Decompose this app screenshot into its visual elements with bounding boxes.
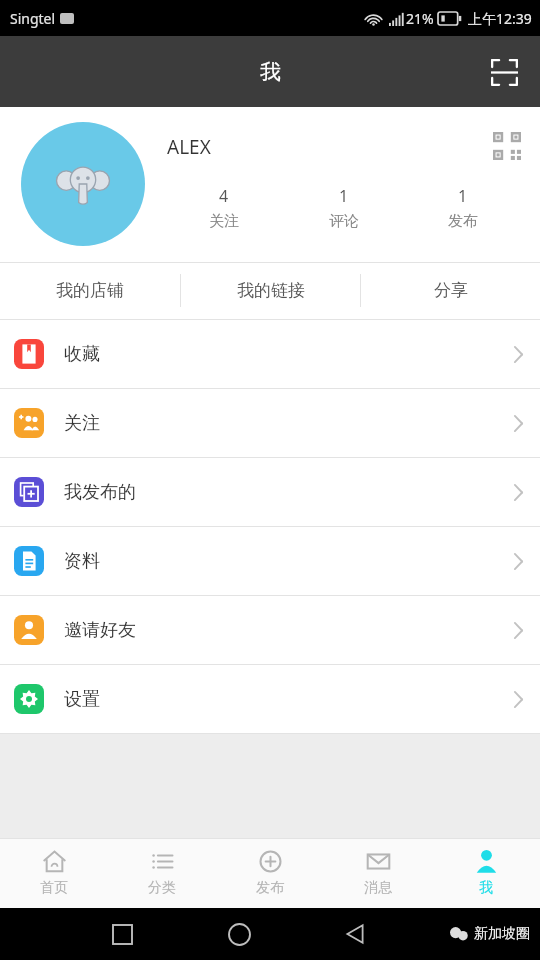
staticText: 我的店铺 xyxy=(56,280,124,301)
button[interactable]: Scan QR code xyxy=(482,50,526,94)
button[interactable]: 资料 xyxy=(0,527,540,595)
staticText: 发布 xyxy=(256,879,284,897)
staticText: 1 xyxy=(458,185,468,207)
staticText: 新加坡圈 xyxy=(474,925,530,943)
button[interactable]: 分类 xyxy=(108,839,216,908)
staticText: 发布 xyxy=(448,212,478,231)
staticText: 收藏 xyxy=(64,343,100,366)
button[interactable]: 我的店铺 xyxy=(0,262,180,319)
staticText: 我的链接 xyxy=(237,280,305,301)
button[interactable]: 我 xyxy=(432,839,540,908)
button[interactable]: Home xyxy=(217,912,261,956)
button[interactable]: 发布 xyxy=(216,839,324,908)
staticText: 我 xyxy=(479,879,493,897)
staticText: 我 xyxy=(260,59,281,85)
staticText: 分享 xyxy=(434,280,468,301)
button[interactable] xyxy=(21,122,145,246)
staticText: 21% xyxy=(406,9,434,28)
button[interactable]: Recent apps xyxy=(100,912,144,956)
staticText: 关注 xyxy=(209,212,239,231)
staticText: 资料 xyxy=(64,550,100,573)
staticText: Singtel xyxy=(10,9,56,28)
button[interactable]: 1 xyxy=(413,185,513,231)
staticText: 上午12:39 xyxy=(468,9,532,28)
button[interactable]: Back xyxy=(333,912,377,956)
staticText: 1 xyxy=(339,185,349,207)
staticText: 我发布的 xyxy=(64,481,136,504)
button[interactable]: 关注 xyxy=(0,389,540,457)
button[interactable]: My QR code xyxy=(486,125,528,167)
staticText: 首页 xyxy=(40,879,68,897)
button[interactable]: 收藏 xyxy=(0,320,540,388)
staticText: 分类 xyxy=(148,879,176,897)
staticText: 4 xyxy=(219,185,229,207)
button[interactable]: 分享 xyxy=(361,262,540,319)
button[interactable]: 我的链接 xyxy=(181,262,360,319)
button[interactable]: 4 xyxy=(174,185,274,231)
staticText: 消息 xyxy=(364,879,392,897)
staticText: 邀请好友 xyxy=(64,619,136,642)
staticText: ALEX xyxy=(167,134,211,160)
button[interactable]: 设置 xyxy=(0,665,540,733)
staticText: 评论 xyxy=(329,212,359,231)
button[interactable]: 首页 xyxy=(0,839,108,908)
button[interactable]: 新加坡圈 xyxy=(449,925,530,943)
button[interactable]: 消息 xyxy=(324,839,432,908)
staticText: 关注 xyxy=(64,412,100,435)
button[interactable]: 邀请好友 xyxy=(0,596,540,664)
button[interactable]: 1 xyxy=(294,185,394,231)
button[interactable]: 我发布的 xyxy=(0,458,540,526)
staticText: 设置 xyxy=(64,688,100,711)
